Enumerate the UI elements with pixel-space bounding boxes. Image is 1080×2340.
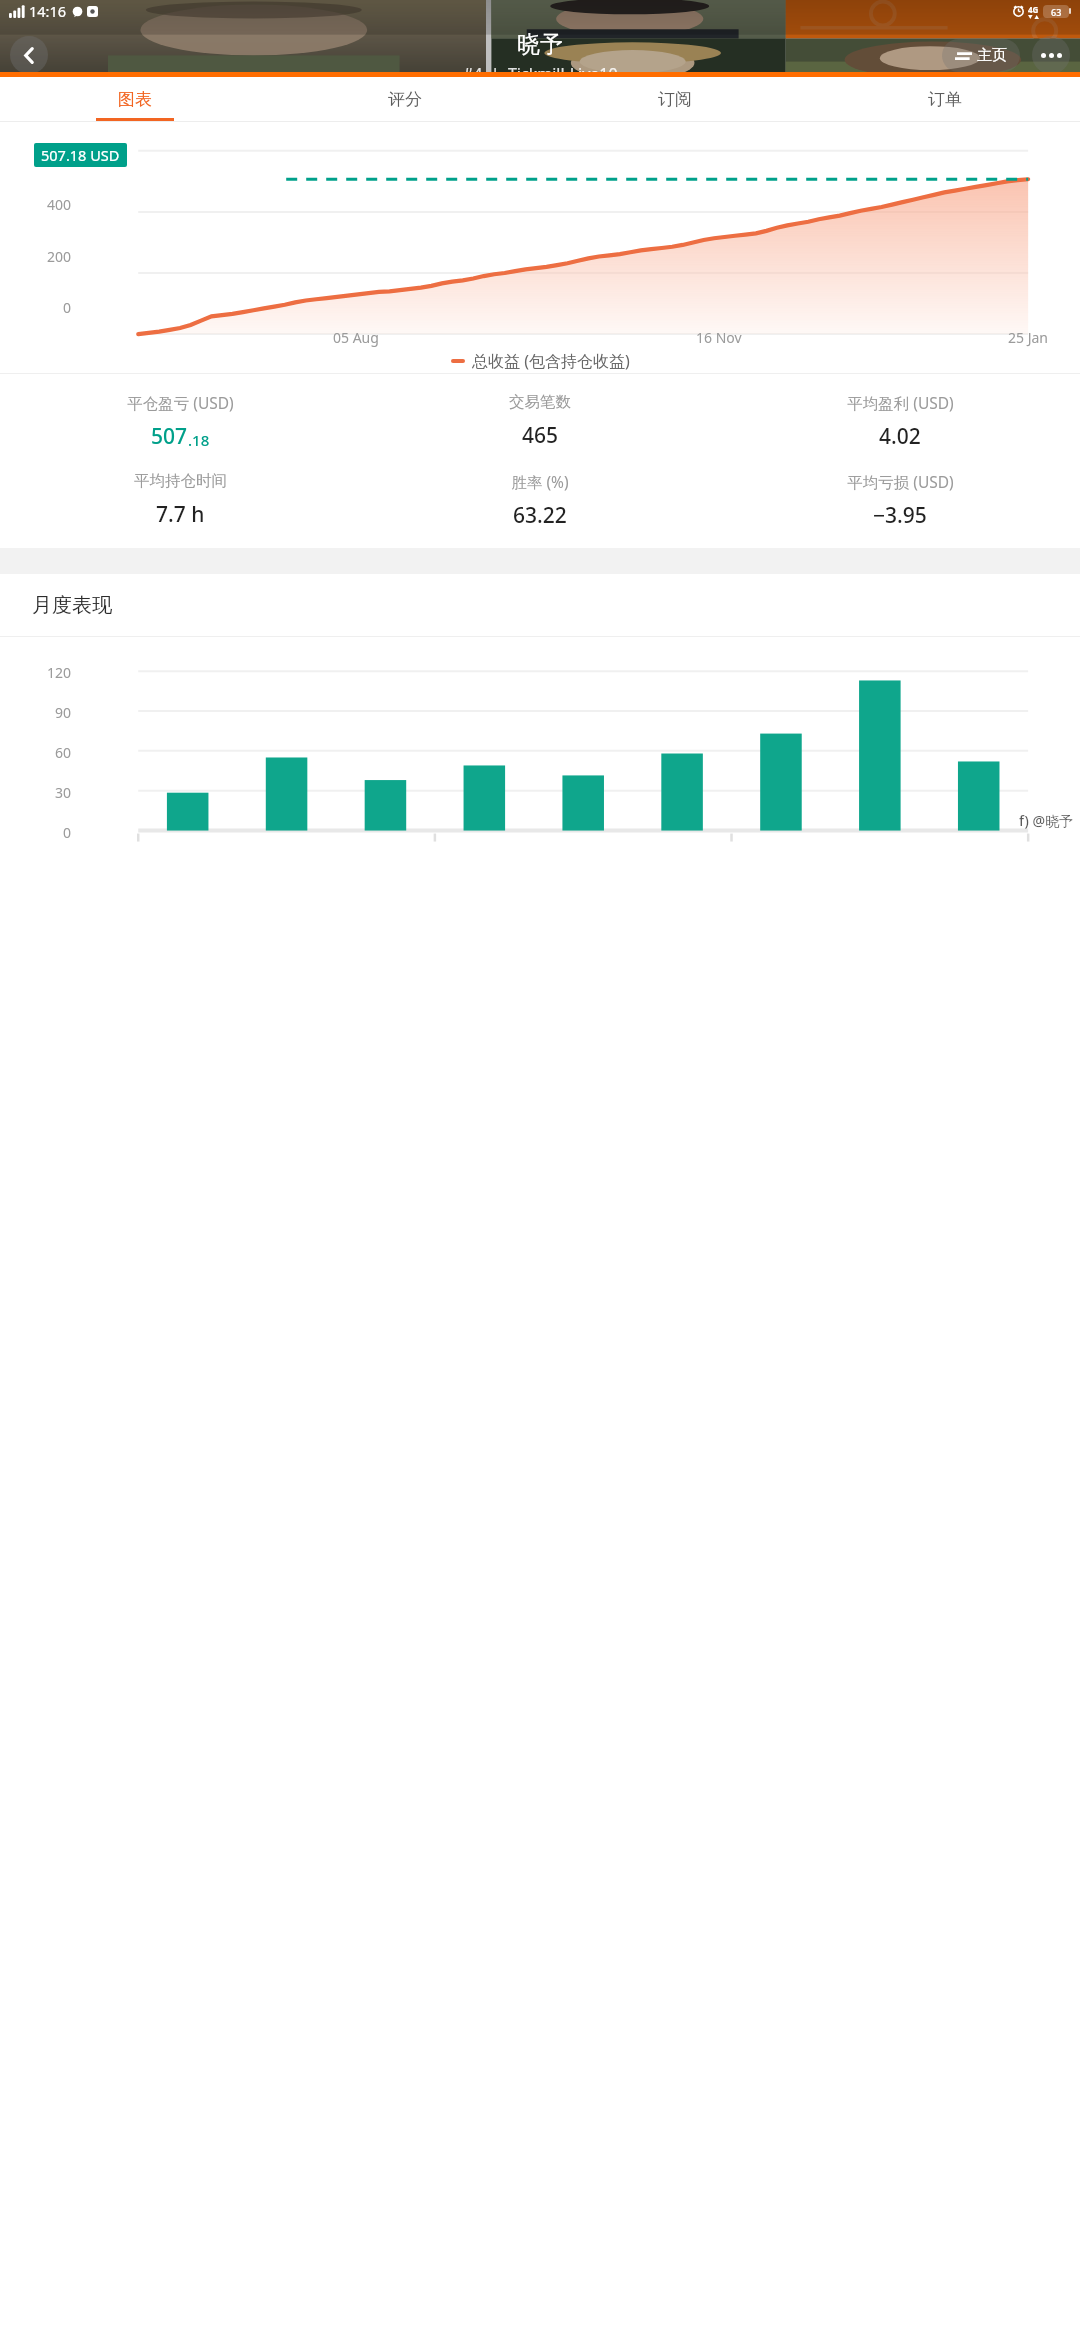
staticText: 465 [522,421,559,450]
staticText: 0 [63,823,72,842]
button[interactable]: 平均亏损 (USD) [720,471,1080,530]
staticText: 平均持仓时间 [134,471,227,491]
button[interactable]: 交易笔数 [360,392,720,450]
staticText: 25 Jan [1008,328,1048,347]
staticText: 平均盈利 (USD) [847,392,954,413]
staticText: 507.18 USD [41,145,120,165]
staticText: 63 [1051,6,1062,18]
button[interactable]: 胜率 (%) [360,471,720,530]
button[interactable]: 平仓盈亏 (USD) [0,392,360,451]
staticText: 14:16 [29,1,67,21]
staticText: 4G [1028,4,1039,15]
staticText: 200 [47,247,72,266]
button[interactable]: 图表 [0,77,270,121]
staticText: 60 [55,743,72,762]
staticText: −3.95 [873,501,927,530]
staticText: 30 [55,783,72,802]
staticText: 评分 [388,89,422,110]
staticText: #4 | Tickmill-Live10 [463,63,618,85]
staticText: 507 [151,422,188,451]
staticText: 订阅 [658,89,692,110]
button[interactable]: 订阅 [540,77,810,121]
button[interactable]: More options [1032,36,1070,74]
button[interactable]: 主页 [942,39,1020,72]
staticText: 胜率 (%) [511,471,569,492]
button[interactable]: 平均持仓时间 [0,471,360,529]
staticText: 90 [55,703,72,722]
staticText: 7.7 h [156,500,205,529]
button[interactable]: Back [10,36,48,74]
staticText: 月度表现 [32,593,112,618]
staticText: 4.02 [879,422,921,451]
staticText: 图表 [118,89,152,110]
staticText: .18 [188,430,210,450]
button[interactable]: 评分 [270,77,540,121]
button[interactable]: 平均盈利 (USD) [720,392,1080,451]
staticText: 05 Aug [333,328,379,347]
staticText: 16 Nov [696,328,742,347]
staticText: 400 [47,195,72,214]
staticText: 0 [63,298,72,317]
staticText: 120 [47,663,72,682]
staticText: 63.22 [513,501,567,530]
staticText: 交易笔数 [509,392,571,412]
staticText: 平仓盈亏 (USD) [127,392,234,413]
staticText: 主页 [977,46,1007,65]
staticText: f) @晓予 [1019,811,1074,830]
staticText: 总收益 (包含持仓收益) [472,350,630,372]
staticText: 600 [47,143,72,162]
staticText: 平均亏损 (USD) [847,471,954,492]
staticText: 晓予 [517,30,563,59]
other: Alarm [1012,5,1025,18]
staticText: 订单 [928,89,962,110]
button[interactable]: 订单 [810,77,1080,121]
